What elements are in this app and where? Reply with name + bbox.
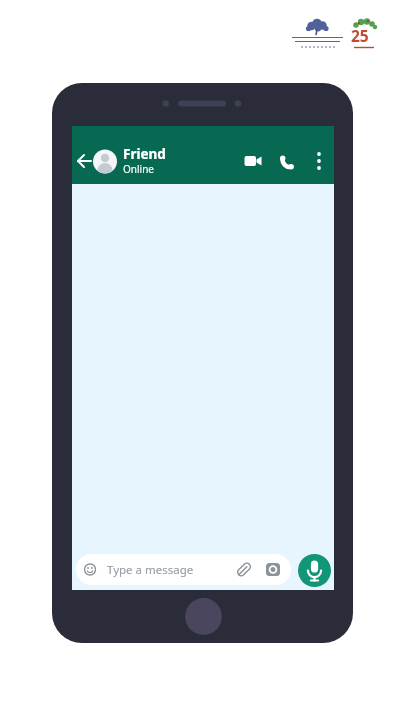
staticText: 25 [351, 25, 369, 46]
button[interactable] [298, 554, 331, 587]
button[interactable]: Type a message [76, 554, 291, 585]
button[interactable]: Friend [72, 126, 334, 184]
staticText: Online [123, 162, 154, 176]
staticText: Friend [123, 145, 166, 163]
staticText: Type a message [107, 562, 194, 578]
